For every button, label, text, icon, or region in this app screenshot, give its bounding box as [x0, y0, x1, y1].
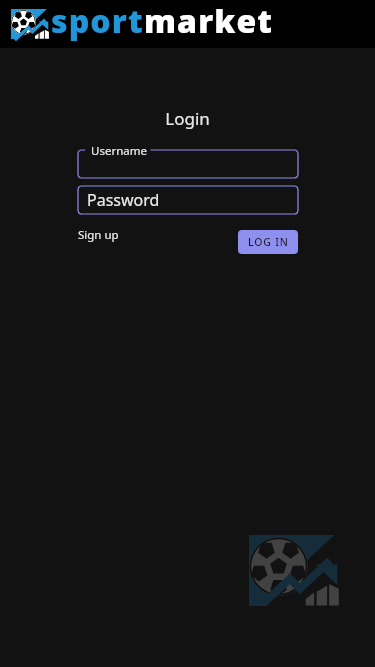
staticText: Password — [87, 189, 160, 211]
staticText: Login — [0, 107, 375, 130]
staticText: market — [144, 0, 274, 43]
button[interactable]: Sign up — [78, 227, 119, 243]
staticText: LOG IN — [248, 235, 289, 249]
button[interactable]: Password — [78, 186, 298, 214]
button[interactable]: Username — [78, 144, 298, 178]
button[interactable]: LOG IN — [238, 230, 298, 254]
staticText: sport — [51, 0, 144, 43]
staticText: Username — [91, 143, 147, 159]
